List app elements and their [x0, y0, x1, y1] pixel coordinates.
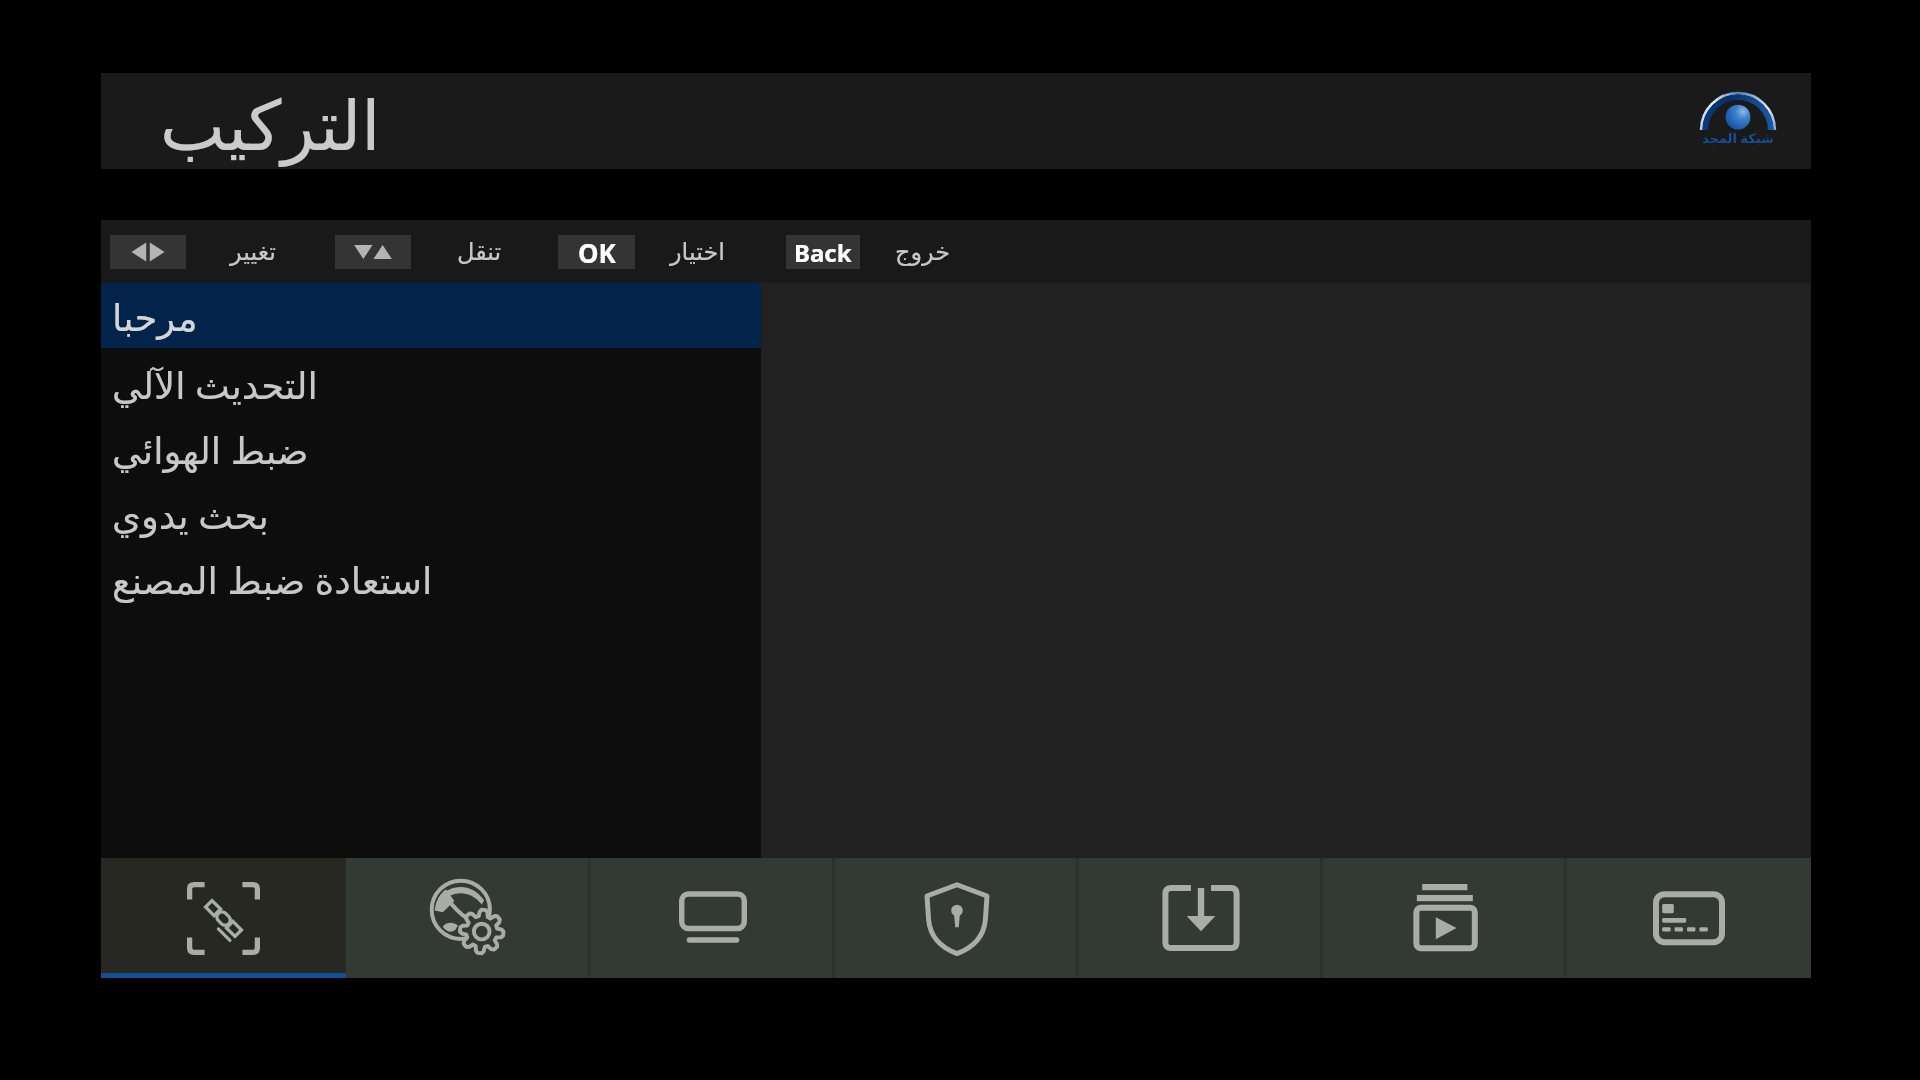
button[interactable]: OK	[558, 235, 635, 269]
button[interactable]: Media player	[1323, 858, 1567, 978]
button[interactable]: Display	[591, 858, 835, 978]
button[interactable]: التحديث الآلي	[101, 348, 761, 413]
staticText: Back	[794, 236, 852, 269]
button[interactable]: استعادة ضبط المصنع	[101, 543, 761, 608]
button[interactable]: Software update	[1079, 858, 1323, 978]
staticText: بحث يدوي	[112, 489, 269, 539]
button[interactable]: اختيار	[670, 234, 725, 270]
staticText: تنقل	[457, 238, 502, 266]
staticText: شبكة المجد	[1702, 129, 1774, 147]
button[interactable]: ضبط الهوائي	[101, 413, 761, 478]
button[interactable]: تنقل	[457, 234, 502, 270]
button[interactable]: Network settings	[346, 858, 591, 978]
staticText: استعادة ضبط المصنع	[112, 554, 433, 604]
staticText: مرحبا	[112, 297, 198, 340]
staticText: OK	[578, 235, 616, 269]
button[interactable]: Security	[835, 858, 1079, 978]
button[interactable]: Up / Down	[335, 235, 411, 269]
button[interactable]: Left / Right	[110, 235, 186, 269]
button[interactable]: تغيير	[230, 234, 276, 270]
staticText: التحديث الآلي	[112, 359, 318, 409]
button[interactable]: بحث يدوي	[101, 478, 761, 543]
button[interactable]: مرحبا	[101, 283, 761, 348]
staticText: اختيار	[670, 238, 725, 266]
staticText: ضبط الهوائي	[112, 424, 309, 474]
staticText: تغيير	[230, 238, 276, 266]
button[interactable]: Installation	[101, 858, 346, 978]
button[interactable]: Back	[786, 235, 860, 269]
button[interactable]: Conditional access	[1567, 858, 1811, 978]
button[interactable]: خروج	[895, 234, 951, 270]
staticText: خروج	[895, 238, 951, 266]
staticText: التركيب	[160, 86, 381, 166]
